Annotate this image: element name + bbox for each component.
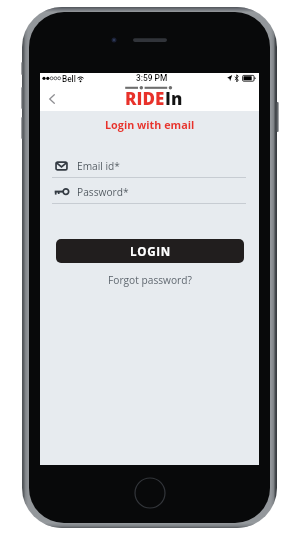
staticText: Bell	[62, 74, 76, 84]
button[interactable]: Password*	[40, 180, 259, 204]
staticText: Email id*	[77, 159, 120, 173]
staticText: RIDE	[125, 87, 165, 110]
staticText: LOGIN	[130, 244, 171, 260]
staticText: 3:59 PM	[136, 73, 168, 83]
button[interactable]: Email id*	[40, 154, 259, 178]
staticText: Login with email	[105, 117, 195, 132]
button[interactable]: Back	[40, 85, 64, 112]
staticText: Password*	[77, 185, 129, 199]
staticText: In	[165, 87, 183, 110]
button[interactable]: LOGIN	[56, 239, 244, 263]
button[interactable]: Forgot password?	[108, 273, 192, 287]
